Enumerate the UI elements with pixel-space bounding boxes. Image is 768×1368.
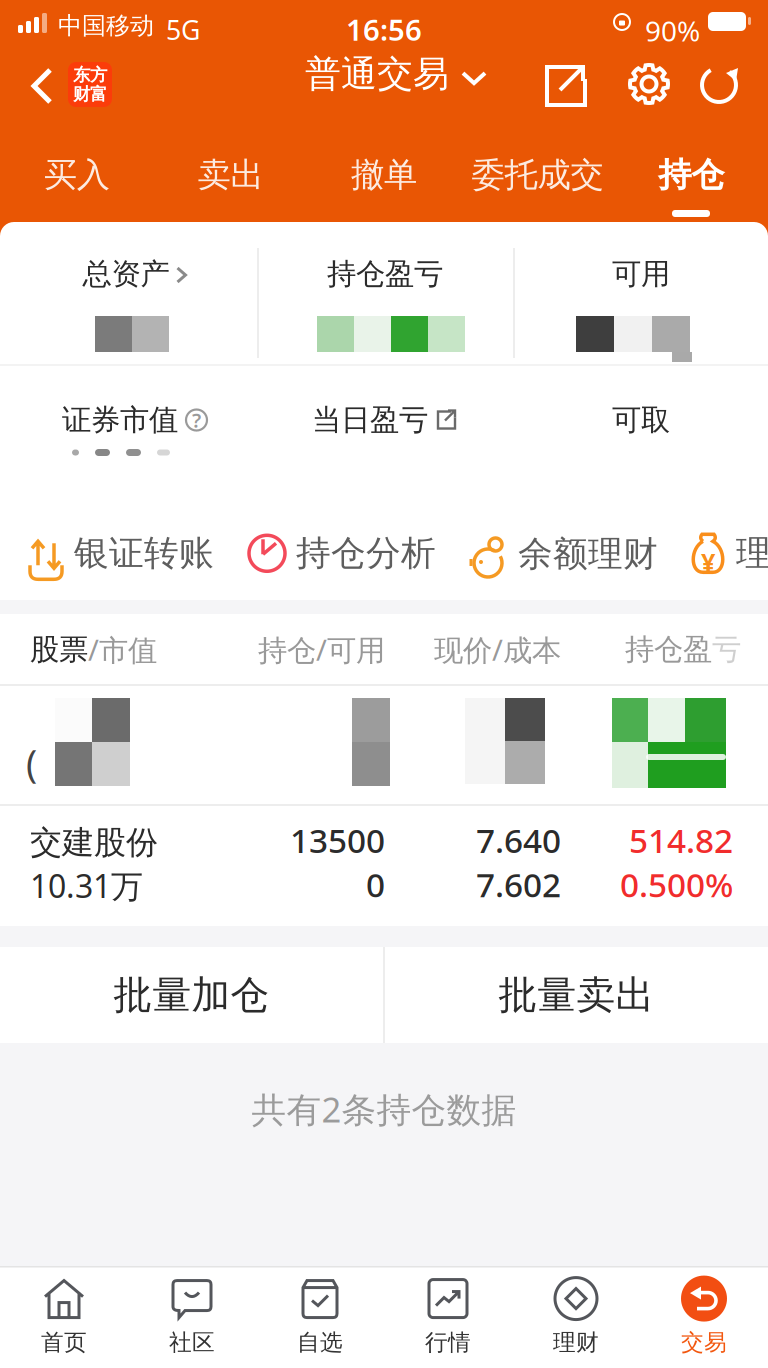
staticText: 0.500% (620, 862, 733, 907)
staticText: 委托成交 (472, 154, 604, 195)
staticText: 自选 (297, 1329, 343, 1356)
staticText: 交建股份 (30, 823, 158, 862)
staticText: 交易 (681, 1329, 727, 1356)
button[interactable]: 当日盈亏 (312, 402, 458, 438)
button[interactable]: 普通交易 (305, 52, 487, 96)
staticText: 撤单 (351, 154, 417, 195)
staticText: 批量加仓 (113, 971, 269, 1019)
staticText: 社区 (169, 1329, 215, 1356)
button[interactable]: 持仓 (614, 140, 768, 210)
button[interactable]: 交易 (640, 1274, 768, 1360)
staticText: 90% (645, 12, 700, 49)
staticText: 持仓/可用 (258, 630, 385, 669)
button[interactable]: 理财 (512, 1274, 640, 1360)
staticText: 514.82 (629, 818, 733, 862)
staticText: 5G (166, 12, 200, 47)
button[interactable]: 委托成交 (461, 140, 614, 210)
staticText: 0 (366, 862, 385, 907)
staticText: 亏 (712, 631, 741, 667)
staticText: 余额理财 (518, 533, 658, 575)
staticText: 持仓分析 (296, 532, 436, 575)
staticText: 现价/成本 (434, 630, 561, 669)
button[interactable]: 银证转账 (28, 532, 214, 575)
button[interactable]: 首页 (0, 1274, 128, 1360)
staticText: 理财产品 (736, 532, 768, 575)
staticText: 持仓盈亏 (327, 256, 443, 292)
button[interactable]: 社区 (128, 1274, 256, 1360)
staticText: 16:56 (346, 10, 422, 49)
staticText: 银证转账 (74, 532, 214, 575)
staticText: 可用 (612, 256, 670, 292)
button[interactable]: 刷新 (696, 61, 742, 107)
staticText: 中国移动 (58, 11, 154, 40)
staticText: 总资产 (82, 256, 169, 292)
staticText: 13500 (290, 818, 385, 862)
staticText: 持仓盈 (625, 631, 712, 667)
staticText: 持仓 (658, 154, 724, 195)
staticText: 东方 (73, 64, 107, 85)
staticText: 首页 (41, 1329, 87, 1356)
staticText: 证券市值 (62, 402, 178, 438)
staticText: ( (26, 738, 37, 788)
staticText: /市值 (88, 630, 157, 669)
staticText: 当日盈亏 (312, 402, 428, 438)
staticText: 行情 (425, 1329, 471, 1356)
staticText: 7.640 (476, 818, 561, 862)
staticText: ? (192, 407, 201, 433)
button[interactable]: 批量加仓 (0, 947, 383, 1043)
staticText: 7.602 (476, 862, 561, 907)
staticText: 10.31万 (30, 864, 143, 907)
button[interactable]: 卖出 (154, 140, 307, 210)
staticText: 共有2条持仓数据 (251, 1086, 516, 1132)
staticText: 批量卖出 (498, 971, 654, 1019)
button[interactable]: 设置 (626, 61, 672, 107)
staticText: 财富 (73, 83, 107, 105)
staticText: 股票 (30, 631, 88, 667)
button[interactable]: 行情 (384, 1274, 512, 1360)
staticText: 卖出 (197, 154, 263, 195)
button[interactable]: 持仓分析 (248, 532, 436, 575)
button[interactable]: ¥ (690, 532, 768, 575)
button[interactable]: 批量卖出 (385, 947, 768, 1043)
staticText: 买入 (44, 154, 110, 195)
button[interactable]: 余额理财 (466, 532, 658, 576)
button[interactable]: 自选 (256, 1274, 384, 1360)
staticText: 理财 (553, 1329, 599, 1356)
button[interactable]: 总资产 (82, 256, 187, 292)
button[interactable]: 分享 (544, 62, 590, 108)
button[interactable]: 返回 (20, 58, 64, 114)
staticText: 普通交易 (305, 52, 449, 96)
button[interactable]: 买入 (0, 140, 154, 210)
button[interactable]: 撤单 (307, 140, 461, 210)
staticText: 可取 (612, 402, 670, 438)
staticText: ¥ (701, 545, 715, 579)
